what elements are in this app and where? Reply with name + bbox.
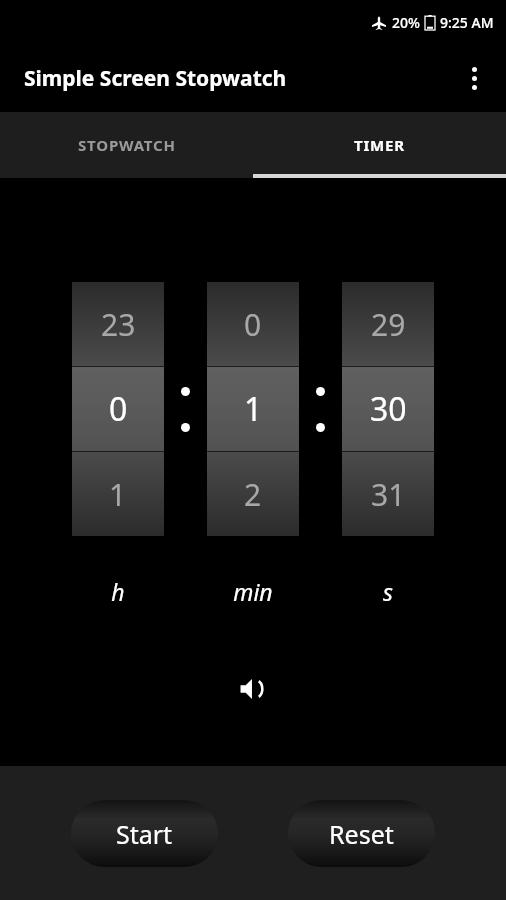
staticText: 1 xyxy=(244,387,263,431)
button[interactable]: Seconds xyxy=(342,282,434,536)
staticText: 2 xyxy=(244,474,262,515)
staticText: 1 xyxy=(109,474,127,515)
button[interactable]: Minutes xyxy=(207,282,299,536)
staticText: 9:25 AM xyxy=(440,13,494,32)
staticText: 23 xyxy=(101,304,136,345)
staticText: TIMER xyxy=(354,135,405,155)
staticText: Start xyxy=(116,817,173,851)
staticText: 29 xyxy=(371,304,406,345)
button[interactable]: Sound on xyxy=(231,667,275,711)
staticText: 0 xyxy=(244,304,262,345)
button[interactable]: Start xyxy=(71,800,218,867)
staticText: 20% xyxy=(392,13,420,32)
staticText: STOPWATCH xyxy=(78,135,176,155)
staticText: 30 xyxy=(370,387,407,431)
button[interactable]: Hours xyxy=(72,282,164,536)
staticText: Reset xyxy=(329,817,394,851)
staticText: 31 xyxy=(371,474,406,515)
staticText: min xyxy=(233,576,273,607)
staticText: s xyxy=(383,576,393,607)
button[interactable]: Reset xyxy=(288,800,435,867)
button[interactable]: TIMER xyxy=(253,112,506,178)
staticText: Simple Screen Stopwatch xyxy=(24,64,287,93)
button[interactable]: STOPWATCH xyxy=(0,112,253,178)
staticText: h xyxy=(111,576,125,607)
staticText: 0 xyxy=(109,387,128,431)
button[interactable]: More options xyxy=(450,54,498,102)
